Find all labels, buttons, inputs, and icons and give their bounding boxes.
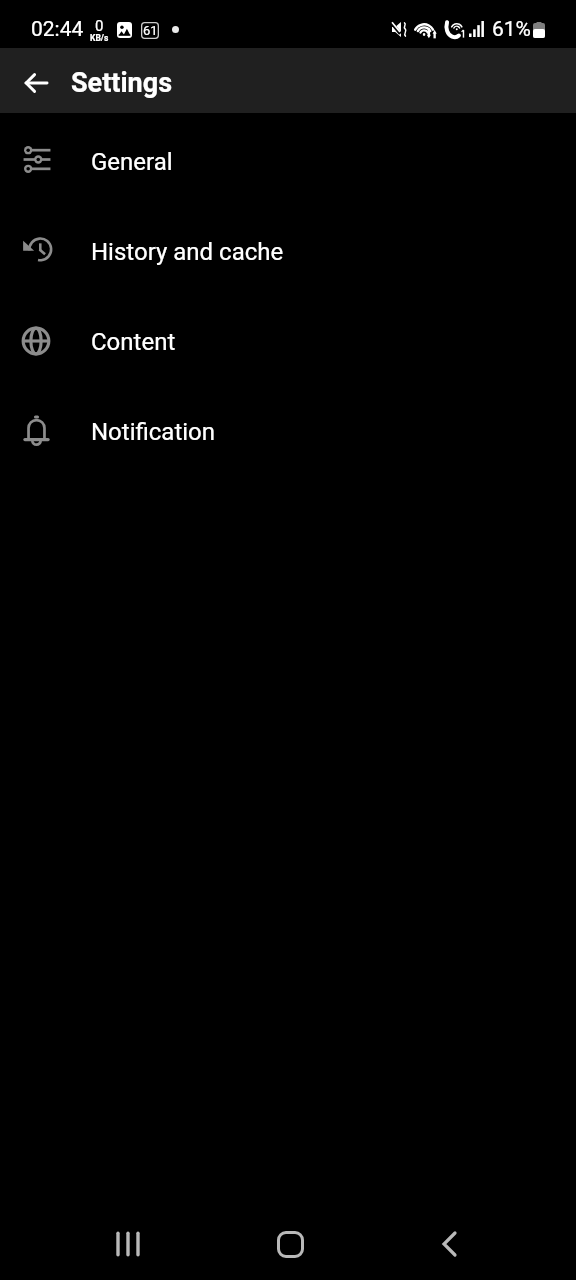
button[interactable]: History and cache — [0, 207, 576, 297]
staticText: 61% — [492, 17, 531, 42]
button[interactable]: Recent apps — [88, 1204, 168, 1280]
staticText: 61 — [143, 23, 158, 38]
staticText: Content — [91, 328, 176, 356]
button[interactable]: Back — [12, 59, 59, 106]
staticText: Notification — [91, 418, 216, 446]
button[interactable]: Content — [0, 297, 576, 387]
button[interactable]: General — [0, 117, 576, 207]
button[interactable]: Notification — [0, 387, 576, 477]
staticText: Settings — [71, 67, 173, 99]
button[interactable]: Back — [410, 1204, 490, 1280]
button[interactable]: Home — [250, 1204, 330, 1280]
staticText: History and cache — [91, 238, 284, 266]
staticText: 02:44 — [31, 17, 84, 42]
staticText: KB/s — [90, 33, 109, 43]
staticText: General — [91, 148, 173, 176]
staticText: 0 — [95, 17, 104, 35]
